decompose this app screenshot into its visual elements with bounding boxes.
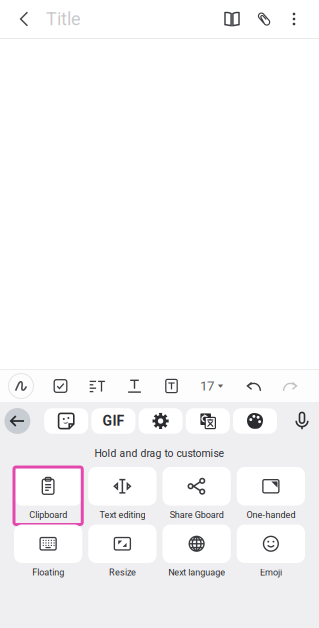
button[interactable]: Clipboard [14,467,82,524]
button[interactable]: Attach file [248,0,280,38]
button[interactable]: One-handed [237,467,305,524]
button[interactable]: Text box [153,370,190,402]
staticText: One-handed [246,510,295,520]
button[interactable]: Undo [236,370,272,402]
button[interactable]: Next language [162,524,231,582]
button[interactable] [44,408,91,434]
staticText: 17 [200,378,214,394]
button[interactable]: More options [280,0,308,38]
button[interactable]: Text editing [88,467,156,524]
staticText: Floating [32,567,64,578]
button[interactable]: Redo [272,370,308,402]
button[interactable] [186,408,233,434]
staticText: Title [46,8,81,30]
staticText: Next language [168,567,225,578]
button[interactable]: Share Gboard [162,467,231,524]
button[interactable] [139,408,186,434]
button[interactable]: Back [0,408,44,434]
button[interactable]: Reading view [216,0,248,38]
staticText: Clipboard [29,510,67,520]
staticText: Share Gboard [170,510,224,520]
button[interactable]: Resize [88,524,156,582]
button[interactable]: Floating [14,524,82,582]
button[interactable]: GIF [91,408,139,434]
button[interactable]: Text style [116,370,153,402]
button[interactable]: Handwriting [0,370,42,402]
staticText: Emoji [260,567,282,578]
button[interactable]: Checklist [42,370,79,402]
button[interactable]: Back [9,0,39,38]
button[interactable]: 17 [190,370,234,402]
staticText: Hold and drag to customise [94,447,224,460]
button[interactable]: Voice input [289,408,315,434]
button[interactable]: Emoji [237,524,305,582]
staticText: Text editing [99,510,145,520]
button[interactable]: Paragraph style [79,370,116,402]
button[interactable] [233,408,280,434]
staticText: GIF [102,413,124,429]
staticText: Resize [109,567,136,578]
